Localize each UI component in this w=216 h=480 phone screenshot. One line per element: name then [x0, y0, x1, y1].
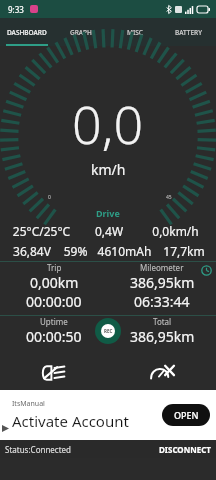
staticText: Status:Connected	[5, 444, 72, 455]
staticText: Activate Account	[12, 411, 129, 431]
staticText: DISCONNECT	[159, 444, 211, 455]
staticText: Uptime	[40, 316, 68, 327]
button[interactable]: DASHBOARD	[0, 18, 54, 46]
button[interactable]: OPEN	[162, 404, 210, 426]
button[interactable]: Record	[95, 318, 121, 344]
staticText: 0,00km	[30, 273, 79, 292]
button[interactable]: GRAPH	[54, 18, 108, 46]
staticText: ItsManual	[12, 399, 45, 409]
staticText: 0,0km/h	[140, 223, 211, 239]
staticText: DASHBOARD	[7, 28, 47, 37]
button[interactable]: MISC	[108, 18, 162, 46]
staticText: 386,95km	[130, 327, 195, 346]
button[interactable]: Speed limit off	[108, 356, 216, 390]
button[interactable]: Mileometer	[108, 262, 216, 311]
button[interactable]: ItsManual	[0, 390, 216, 440]
staticText: 17,7km	[157, 243, 211, 259]
staticText: REC	[104, 328, 113, 334]
staticText: Mileometer	[140, 262, 184, 273]
button[interactable]: BATTERY	[162, 18, 216, 46]
staticText: km/h	[91, 160, 126, 179]
staticText: 25°C/25°C	[5, 223, 78, 239]
button[interactable]: Trip	[0, 262, 108, 311]
staticText: 00:00:00	[26, 292, 82, 311]
button[interactable]: Total	[108, 316, 216, 346]
staticText: BATTERY	[175, 28, 203, 37]
button[interactable]: Headlight off	[0, 356, 108, 390]
button[interactable]: Uptime	[0, 316, 108, 346]
staticText: Trip	[47, 262, 62, 273]
staticText: Total	[153, 316, 172, 327]
staticText: MISC	[127, 28, 143, 37]
staticText: 0,0	[72, 88, 144, 159]
staticText: 0,4W	[78, 223, 140, 239]
staticText: 0	[48, 194, 51, 201]
staticText: GRAPH	[70, 28, 92, 37]
staticText: 06:33:44	[134, 292, 190, 311]
staticText: 36,84V	[5, 243, 59, 259]
staticText: OPEN	[174, 409, 199, 421]
staticText: Drive	[96, 207, 120, 219]
staticText: 00:00:50	[26, 327, 82, 346]
staticText: 9:33	[8, 4, 24, 15]
staticText: 386,95km	[130, 273, 195, 292]
staticText: 45	[166, 194, 172, 201]
staticText: 4610mAh	[92, 243, 157, 259]
button[interactable]: DISCONNECT	[159, 440, 211, 458]
button[interactable]: History	[199, 263, 213, 277]
staticText: 59%	[59, 243, 92, 259]
